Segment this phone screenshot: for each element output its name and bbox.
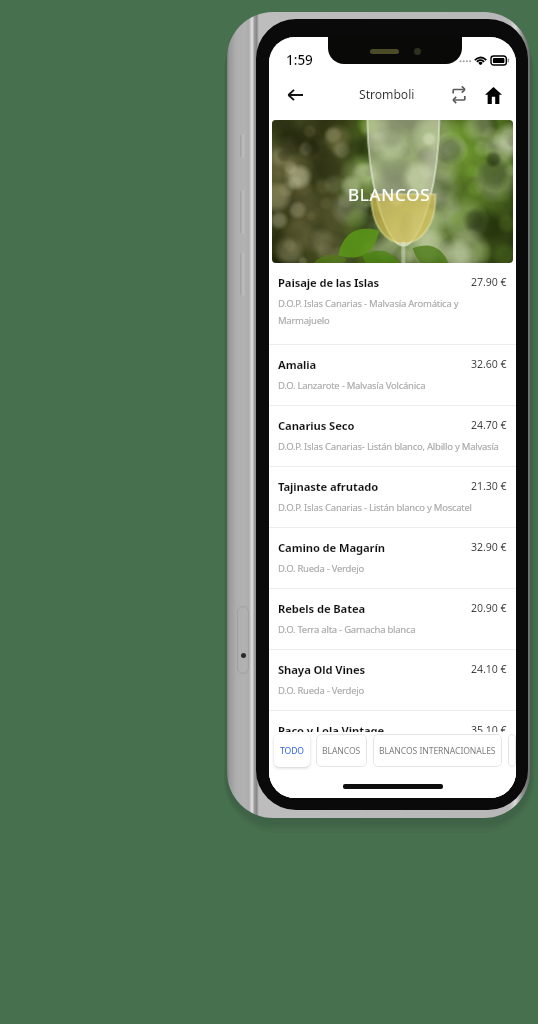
staticText: Tajinaste afrutado xyxy=(278,479,471,494)
button[interactable]: Tajinaste afrutado xyxy=(269,467,516,527)
staticText: 24.10 € xyxy=(471,662,507,676)
staticText: BLANCOS xyxy=(348,183,431,206)
staticText: Amalia xyxy=(278,357,471,372)
button[interactable]: Paco y Lola Vintage xyxy=(269,711,516,771)
staticText: 32.90 € xyxy=(471,540,507,554)
button[interactable]: TODO xyxy=(274,734,310,767)
staticText: D.O. Terra alta - Garnacha blanca xyxy=(278,623,416,636)
staticText: D.O.P. Islas Canarias- Listán blanco, Al… xyxy=(278,440,499,453)
button[interactable]: BLANCOS category xyxy=(272,120,513,263)
button[interactable]: BLANCOS INTERNACIONALES xyxy=(373,734,502,767)
button[interactable]: Amalia xyxy=(269,345,516,405)
staticText: D.O.P. Islas Canarias - Malvasía Aromáti… xyxy=(278,297,507,327)
staticText: 35.10 € xyxy=(471,723,507,737)
button[interactable]: Repeat xyxy=(442,78,476,112)
staticText: 1:59 xyxy=(286,51,313,69)
button[interactable]: BLANCOS xyxy=(316,734,367,767)
staticText: 24.70 € xyxy=(471,418,507,432)
staticText: BLANCOS xyxy=(322,745,361,757)
button[interactable]: Back xyxy=(280,80,310,110)
button[interactable]: Camino de Magarín xyxy=(269,528,516,588)
button[interactable]: Paisaje de las Islas xyxy=(269,263,516,344)
staticText: 32.60 € xyxy=(471,357,507,371)
staticText: BLANCOS INTERNACIONALES xyxy=(379,745,496,757)
staticText: Rebels de Batea xyxy=(278,601,471,616)
staticText: Shaya Old Vines xyxy=(278,662,471,677)
staticText: D.O. Rias Baixas - Albariño xyxy=(278,745,388,758)
staticText: Paisaje de las Islas xyxy=(278,275,471,290)
staticText: D.O.P. Islas Canarias - Listán blanco y … xyxy=(278,501,472,514)
button[interactable]: Rebels de Batea xyxy=(269,589,516,649)
staticText: D.O. Rueda - Verdejo xyxy=(278,562,364,575)
staticText: Stromboli xyxy=(359,86,415,103)
staticText: Paco y Lola Vintage xyxy=(278,723,471,738)
button[interactable]: Shaya Old Vines xyxy=(269,650,516,710)
staticText: 20.90 € xyxy=(471,601,507,615)
staticText: D.O. Lanzarote - Malvasía Volcánica xyxy=(278,379,426,392)
staticText: Canarius Seco xyxy=(278,418,471,433)
staticText: TODO xyxy=(280,745,304,757)
staticText: Camino de Magarín xyxy=(278,540,471,555)
staticText: 21.30 € xyxy=(471,479,507,493)
staticText: 27.90 € xyxy=(471,275,507,289)
button[interactable]: Canarius Seco xyxy=(269,406,516,466)
button[interactable]: RO xyxy=(508,734,516,767)
button[interactable]: Home xyxy=(476,78,510,112)
staticText: D.O. Rueda - Verdejo xyxy=(278,684,364,697)
